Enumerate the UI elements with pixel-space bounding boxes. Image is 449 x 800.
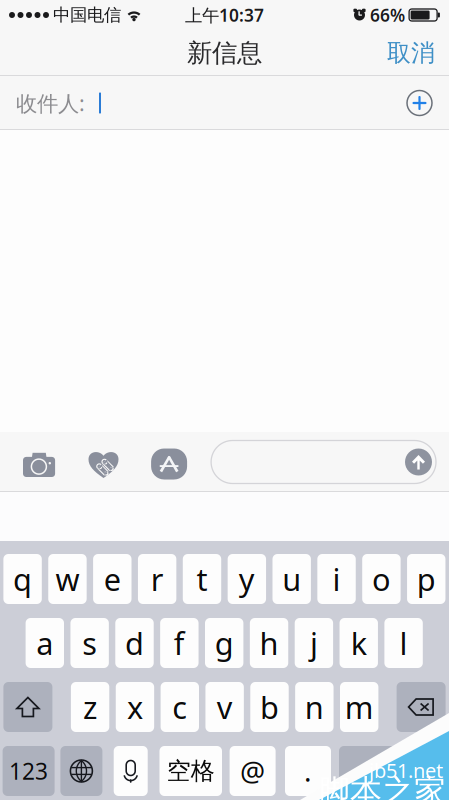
button[interactable]: Delete <box>397 682 446 732</box>
staticText: o <box>372 559 391 599</box>
staticText: z <box>83 687 97 727</box>
button[interactable]: 换行 <box>339 746 446 796</box>
button[interactable]: l <box>384 618 423 668</box>
staticText: 中国电信 <box>53 4 121 26</box>
button[interactable]: g <box>205 618 243 668</box>
staticText: 上午10:37 <box>185 3 264 26</box>
staticText: b <box>260 687 279 727</box>
button[interactable]: b <box>250 682 289 732</box>
button[interactable]: x <box>116 682 154 732</box>
button[interactable]: Add contact <box>406 89 433 116</box>
staticText: h <box>260 623 279 663</box>
button[interactable]: i <box>317 554 356 604</box>
staticText: d <box>125 623 144 663</box>
staticText: u <box>282 559 301 599</box>
button[interactable]: 123 <box>3 746 55 796</box>
staticText: e <box>104 559 121 599</box>
button[interactable]: k <box>340 618 378 668</box>
button[interactable]: Camera <box>23 452 55 477</box>
button[interactable]: Digital Touch <box>88 450 119 478</box>
staticText: m <box>345 687 374 727</box>
button[interactable]: z <box>71 682 109 732</box>
staticText: n <box>305 687 324 727</box>
button[interactable]: n <box>295 682 333 732</box>
button[interactable]: j <box>295 618 333 668</box>
button[interactable]: 空格 <box>159 746 222 796</box>
button[interactable]: f <box>160 618 199 668</box>
button[interactable]: p <box>407 554 445 604</box>
staticText: g <box>215 623 234 663</box>
staticText: 取消 <box>387 38 435 68</box>
button[interactable]: o <box>362 554 401 604</box>
button[interactable]: v <box>205 682 244 732</box>
button[interactable]: 取消 <box>373 30 449 76</box>
staticText: j <box>310 623 318 663</box>
button[interactable]: c <box>161 682 199 732</box>
staticText: 新信息 <box>187 37 262 68</box>
staticText: . <box>304 752 312 790</box>
button[interactable]: t <box>183 554 221 604</box>
staticText: s <box>82 623 97 663</box>
staticText: x <box>127 687 143 727</box>
staticText: @ <box>240 752 265 790</box>
staticText: 换行 <box>368 756 416 786</box>
staticText: t <box>196 559 207 599</box>
button[interactable]: e <box>93 554 131 604</box>
staticText: v <box>217 687 233 727</box>
button[interactable]: m <box>340 682 378 732</box>
button[interactable]: s <box>70 618 109 668</box>
button[interactable]: Switch keyboard <box>60 746 102 796</box>
button[interactable]: Send <box>405 448 432 475</box>
button[interactable]: . <box>285 746 331 796</box>
staticText: r <box>151 559 164 599</box>
button[interactable]: u <box>272 554 311 604</box>
staticText: 66% <box>370 3 405 26</box>
staticText: jb51.net <box>369 757 443 773</box>
button[interactable]: h <box>250 618 288 668</box>
button[interactable]: Dictate <box>114 746 148 796</box>
button[interactable]: q <box>3 554 42 604</box>
staticText: y <box>239 559 255 599</box>
staticText: p <box>417 559 436 599</box>
staticText: q <box>13 559 32 599</box>
button[interactable]: a <box>26 618 64 668</box>
staticText: a <box>36 623 53 663</box>
button[interactable]: w <box>48 554 87 604</box>
button[interactable]: d <box>115 618 154 668</box>
staticText: i <box>333 559 341 599</box>
button[interactable]: Shift <box>3 682 52 732</box>
staticText: 123 <box>9 756 48 786</box>
button[interactable]: y <box>228 554 266 604</box>
button[interactable]: Apps <box>151 448 187 479</box>
staticText: w <box>55 559 79 599</box>
button[interactable]: @ <box>230 746 276 796</box>
staticText: l <box>400 623 408 663</box>
staticText: k <box>351 623 367 663</box>
staticText: 脚本之家 <box>318 772 446 796</box>
staticText: c <box>172 687 187 727</box>
staticText: f <box>174 623 185 663</box>
button[interactable]: r <box>138 554 176 604</box>
staticText: 空格 <box>167 756 215 786</box>
staticText: 收件人: <box>16 89 85 117</box>
